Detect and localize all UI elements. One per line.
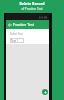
staticText: Select Test bbox=[10, 32, 23, 36]
button[interactable]: Add bbox=[42, 89, 48, 95]
staticText: of Practice Test bbox=[21, 7, 43, 11]
button[interactable]: Test 1 bbox=[10, 38, 24, 43]
staticText: Test 1 bbox=[11, 39, 19, 43]
staticText: Delete Record bbox=[19, 1, 45, 6]
staticText: Practice Test bbox=[13, 22, 35, 27]
button[interactable]: Back bbox=[6, 21, 13, 28]
